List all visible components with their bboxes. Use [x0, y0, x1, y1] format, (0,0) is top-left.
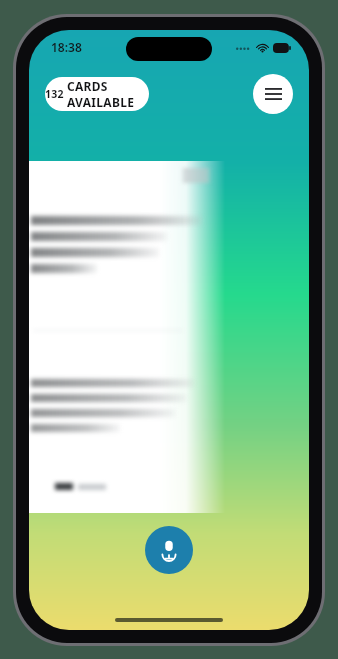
- button[interactable]: 132: [45, 77, 149, 111]
- staticText: 18:38: [51, 39, 82, 55]
- button[interactable]: Menu: [253, 74, 293, 114]
- staticText: CARDS AVAILABLE: [67, 78, 149, 110]
- staticText: 132: [45, 87, 64, 101]
- button[interactable]: Voice input: [145, 526, 193, 574]
